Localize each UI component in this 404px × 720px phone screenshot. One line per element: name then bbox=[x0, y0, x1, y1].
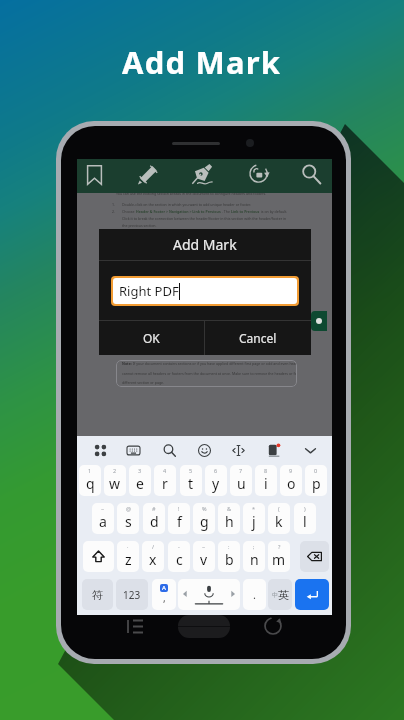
staticText: / bbox=[152, 543, 155, 550]
button[interactable]: 6 bbox=[205, 465, 227, 496]
button[interactable]: 3 bbox=[129, 465, 151, 496]
button[interactable]: 123 bbox=[116, 579, 148, 610]
staticText: k bbox=[275, 512, 283, 531]
staticText: @ bbox=[126, 505, 131, 512]
button[interactable]: Language bbox=[268, 579, 292, 610]
staticText: g bbox=[200, 512, 209, 531]
button[interactable]: Search bbox=[295, 159, 326, 193]
staticText: w bbox=[109, 474, 121, 493]
button[interactable]: OK bbox=[99, 321, 204, 355]
staticText: i bbox=[264, 474, 268, 493]
staticText: c bbox=[176, 550, 183, 569]
staticText: Add Mark bbox=[173, 235, 237, 254]
staticText: 2 bbox=[113, 467, 117, 474]
staticText: Choose bbox=[122, 209, 136, 214]
button[interactable]: Right PDF bbox=[113, 278, 297, 304]
button[interactable]: # bbox=[143, 503, 165, 534]
button[interactable]: Comma bbox=[152, 579, 176, 610]
button[interactable]: Home bbox=[178, 615, 230, 638]
staticText: q bbox=[86, 474, 95, 493]
staticText: Double-click on the section in which you… bbox=[122, 202, 251, 207]
button[interactable]: ~ bbox=[92, 503, 114, 534]
staticText: m bbox=[272, 550, 286, 569]
button[interactable]: Clipboard bbox=[262, 439, 284, 461]
staticText: & bbox=[227, 505, 232, 512]
staticText: ? bbox=[278, 543, 281, 550]
staticText: Right PDF bbox=[119, 282, 179, 300]
button[interactable]: Protect bbox=[243, 159, 275, 193]
staticText: Link to Previous bbox=[231, 209, 260, 214]
staticText: o bbox=[287, 474, 296, 493]
button[interactable]: Text cursor bbox=[227, 439, 249, 461]
button[interactable]: 9 bbox=[280, 465, 302, 496]
staticText: j bbox=[252, 512, 256, 531]
staticText: 7 bbox=[239, 467, 243, 474]
button[interactable]: 0 bbox=[305, 465, 327, 496]
button[interactable]: Space bbox=[178, 579, 240, 610]
button[interactable]: ) bbox=[294, 503, 316, 534]
staticText: t bbox=[188, 474, 194, 493]
button[interactable]: * bbox=[243, 503, 265, 534]
button[interactable]: 7 bbox=[230, 465, 252, 496]
staticText: , bbox=[163, 591, 166, 605]
staticText: a bbox=[99, 512, 107, 531]
button[interactable]: : bbox=[218, 541, 240, 572]
staticText: 0 bbox=[314, 467, 318, 474]
button[interactable]: ; bbox=[243, 541, 265, 572]
staticText: - bbox=[178, 543, 180, 550]
staticText: d bbox=[150, 512, 159, 531]
button[interactable]: & bbox=[218, 503, 240, 534]
staticText: Click it to break the connection between… bbox=[122, 216, 287, 221]
staticText: * bbox=[252, 505, 256, 512]
button[interactable]: 8 bbox=[255, 465, 277, 496]
button[interactable]: Apps bbox=[89, 439, 111, 461]
staticText: r bbox=[162, 474, 168, 493]
staticText: · bbox=[127, 543, 129, 550]
button[interactable]: Search bbox=[158, 439, 180, 461]
staticText: 1. bbox=[112, 202, 115, 207]
button[interactable]: % bbox=[193, 503, 215, 534]
button[interactable]: ! bbox=[168, 503, 190, 534]
staticText: is on by default. bbox=[260, 209, 288, 214]
staticText: 9 bbox=[289, 467, 293, 474]
button[interactable]: Signature bbox=[186, 159, 218, 193]
button[interactable]: Side panel bbox=[311, 311, 327, 331]
button[interactable]: Hide keyboard bbox=[299, 439, 321, 461]
button[interactable]: . bbox=[243, 579, 266, 610]
staticText: b bbox=[225, 550, 234, 569]
staticText: v bbox=[200, 550, 208, 569]
button[interactable]: / bbox=[142, 541, 164, 572]
staticText: # bbox=[152, 505, 156, 512]
staticText: OK bbox=[143, 330, 160, 346]
button[interactable]: Bookmark bbox=[82, 159, 107, 193]
staticText: Header & Footer > Navigation > Link to P… bbox=[136, 209, 221, 214]
button[interactable]: Enter bbox=[295, 579, 329, 610]
button[interactable]: ? bbox=[268, 541, 290, 572]
staticText: . The bbox=[221, 209, 231, 214]
button[interactable]: ~ bbox=[193, 541, 215, 572]
button[interactable]: Back bbox=[260, 613, 286, 639]
button[interactable]: @ bbox=[117, 503, 139, 534]
button[interactable]: 5 bbox=[180, 465, 202, 496]
button[interactable]: Cancel bbox=[205, 321, 311, 355]
button[interactable]: 1 bbox=[79, 465, 101, 496]
staticText: p bbox=[312, 474, 321, 493]
staticText: You can use the existing section breaks … bbox=[116, 191, 267, 196]
staticText: If your document contains sections or if… bbox=[132, 361, 297, 366]
button[interactable]: Emoji bbox=[193, 439, 215, 461]
button[interactable]: · bbox=[117, 541, 139, 572]
button[interactable]: Shift bbox=[83, 541, 114, 572]
button[interactable]: Recents bbox=[122, 613, 148, 639]
button[interactable]: Keyboard layout bbox=[122, 439, 144, 461]
button[interactable]: Edit bbox=[132, 159, 164, 193]
button[interactable]: 2 bbox=[104, 465, 126, 496]
staticText: 英 bbox=[278, 588, 289, 602]
staticText: ) bbox=[304, 505, 306, 512]
button[interactable]: ( bbox=[268, 503, 290, 534]
button[interactable]: - bbox=[168, 541, 190, 572]
button[interactable]: 符 bbox=[82, 579, 113, 610]
button[interactable]: 4 bbox=[154, 465, 176, 496]
staticText: z bbox=[125, 550, 132, 569]
staticText: x bbox=[149, 550, 157, 569]
button[interactable]: Backspace bbox=[300, 541, 329, 572]
